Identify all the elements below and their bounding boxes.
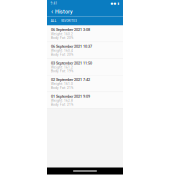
staticText: Weight: 160.4 (51, 49, 73, 53)
staticText: Weight: 160.2 (51, 32, 73, 36)
staticText: 03 September 2021 11:50 (51, 61, 92, 65)
staticText: Weight: 162.8 (51, 99, 73, 103)
staticText: History (55, 9, 73, 15)
staticText: ●● ▮ (110, 2, 119, 5)
staticText: Weight: 161.0 (51, 82, 73, 86)
button[interactable]: 06 September 2021 3:08 (47, 25, 123, 42)
button[interactable]: 02 September 2021 7:42 (47, 75, 123, 92)
staticText: ‹ (51, 7, 53, 16)
staticText: 02 September 2021 7:42 (51, 78, 90, 82)
button[interactable]: Back (49, 7, 55, 16)
staticText: Body Fat: 21% (51, 103, 73, 106)
button[interactable]: ALL (51, 19, 57, 23)
staticText: 06 September 2021 10:37 (51, 44, 92, 49)
staticText: Body Fat: 20% (51, 53, 73, 56)
button[interactable]: 03 September 2021 11:50 (47, 59, 123, 75)
button[interactable]: 01 September 2021 9:09 (47, 92, 123, 108)
staticText: Body Fat: 20% (51, 36, 73, 40)
staticText: 01 September 2021 9:09 (51, 94, 90, 99)
staticText: Weight: 161.2 (51, 65, 73, 69)
button[interactable]: FAVORITES (61, 19, 77, 23)
staticText: ALL (51, 19, 57, 23)
button[interactable]: 06 September 2021 10:37 (47, 42, 123, 58)
staticText: FAVORITES (61, 19, 77, 23)
staticText: Body Fat: 21% (51, 86, 73, 90)
staticText: 9:41 (50, 2, 57, 5)
staticText: Body Fat: 19% (51, 69, 73, 73)
staticText: 06 September 2021 3:08 (51, 28, 90, 32)
